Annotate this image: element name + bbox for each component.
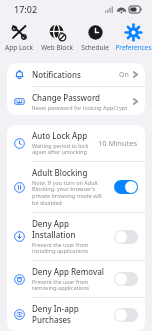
other: Open bbox=[133, 97, 138, 106]
button[interactable]: App Lock bbox=[0, 18, 38, 58]
staticText: Preferences bbox=[115, 43, 152, 52]
staticText: Schedule bbox=[81, 43, 109, 52]
staticText: On bbox=[119, 70, 129, 80]
staticText: Notifications bbox=[32, 69, 81, 80]
button[interactable]: Deny App Installation bbox=[7, 213, 145, 260]
button[interactable]: Toggle off bbox=[114, 272, 138, 286]
button[interactable]: Web Block bbox=[38, 18, 76, 58]
button[interactable]: Notifications bbox=[7, 63, 145, 86]
staticText: Adult Blocking bbox=[32, 167, 88, 178]
staticText: Prevent the user from installing applica… bbox=[32, 241, 109, 255]
button[interactable]: Toggle off bbox=[114, 308, 138, 322]
staticText: Waiting period to lock again after unloc… bbox=[32, 142, 93, 156]
staticText: Change Password bbox=[32, 92, 101, 103]
staticText: 17:02 bbox=[14, 3, 38, 15]
button[interactable]: Schedule bbox=[76, 18, 114, 58]
button[interactable]: Deny In-app Purchases bbox=[7, 298, 145, 331]
button[interactable]: Adult Blocking bbox=[7, 162, 145, 212]
staticText: App Lock bbox=[5, 43, 33, 52]
other: Open bbox=[133, 70, 138, 79]
staticText: Auto Lock App bbox=[32, 130, 88, 141]
button[interactable]: Deny App Removal bbox=[7, 261, 145, 297]
button[interactable]: Toggle on bbox=[114, 180, 138, 194]
staticText: Web Block bbox=[41, 43, 73, 52]
staticText: Deny App Installation bbox=[32, 218, 109, 240]
staticText: Prevent the user from removing applicati… bbox=[32, 278, 109, 292]
button[interactable]: Change Password bbox=[7, 87, 145, 115]
staticText: Note: If you turn on Adult Blocking, you… bbox=[32, 179, 109, 207]
button[interactable]: Preferences bbox=[114, 18, 152, 58]
button[interactable]: Toggle off bbox=[114, 230, 138, 244]
button[interactable]: Auto Lock App bbox=[7, 125, 145, 161]
staticText: Deny In-app Purchases bbox=[32, 303, 109, 325]
staticText: Reset password for locking AppCrypt bbox=[32, 104, 128, 111]
staticText: Deny App Removal bbox=[32, 266, 104, 277]
staticText: 10 Minutes bbox=[98, 138, 138, 148]
